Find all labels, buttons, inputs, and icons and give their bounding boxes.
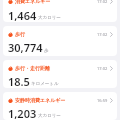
staticText: 18.5 — [8, 74, 30, 88]
staticText: 消費エネルギー — [15, 0, 51, 4]
staticText: 17:02 — [97, 66, 108, 71]
staticText: 30,774 — [8, 40, 43, 55]
staticText: 歩行・走行距離 — [15, 65, 50, 71]
staticText: 大カロリー — [38, 15, 61, 21]
staticText: キロメートル — [31, 81, 59, 87]
button[interactable]: 消費エネルギー — [3, 0, 117, 22]
staticText: 1,464 — [8, 8, 37, 22]
button[interactable]: 歩行・走行距離 — [3, 60, 117, 88]
staticText: 大カロリー — [38, 113, 61, 119]
staticText: 17:02 — [97, 32, 108, 37]
staticText: 1,203 — [8, 106, 37, 120]
staticText: 安静時消費エネルギー — [15, 97, 66, 103]
button[interactable]: 歩行 — [3, 26, 117, 56]
staticText: 歩行 — [15, 31, 25, 37]
staticText: 17:02 — [97, 0, 108, 4]
staticText: 16:59 — [97, 98, 108, 103]
button[interactable]: 安静時消費エネルギー — [3, 92, 117, 120]
staticText: 歩 — [44, 48, 49, 54]
